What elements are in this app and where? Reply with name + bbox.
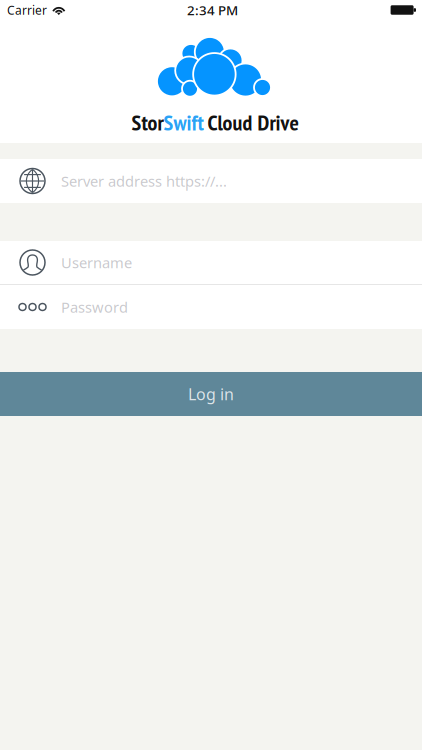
button[interactable]: Server address https://...: [0, 159, 422, 203]
staticText: Server address https://...: [61, 171, 227, 191]
staticText: Cloud Drive: [203, 108, 298, 136]
staticText: Password: [61, 297, 128, 317]
staticText: Log in: [188, 383, 234, 405]
staticText: Swift: [163, 108, 203, 136]
button[interactable]: Username: [0, 241, 422, 284]
staticText: Carrier: [7, 2, 47, 18]
staticText: Stor: [131, 108, 163, 136]
staticText: 2:34 PM: [187, 1, 238, 19]
staticText: Username: [61, 253, 132, 272]
button[interactable]: Password: [0, 285, 422, 329]
button[interactable]: Log in: [0, 372, 422, 416]
